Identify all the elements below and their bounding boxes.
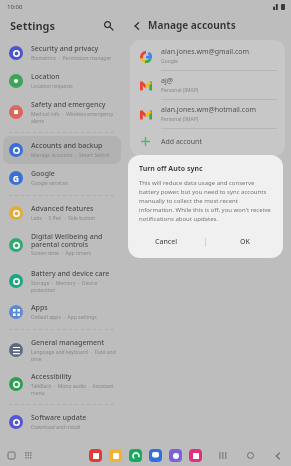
staticText: General management [31,338,105,348]
staticText: Download and install [31,424,81,431]
staticText: Personal (IMAP) [161,87,199,94]
button[interactable]: Back [129,18,144,33]
staticText: G [13,173,19,184]
button[interactable]: Software update [3,408,121,436]
button[interactable]: G [3,164,121,192]
staticText: Auto sync data [136,168,185,178]
staticText: Screen time · App timers [31,250,91,257]
staticText: Manage accounts · Smart Switch [31,152,110,159]
staticText: Accessibility [31,372,72,382]
button[interactable]: Digital Wellbeing and parental controls [3,227,121,262]
staticText: Location [31,72,60,82]
button[interactable]: Phone [129,449,142,462]
button[interactable]: Security and privacy [3,39,121,67]
button[interactable]: Cancel [128,232,205,252]
staticText: OK [240,237,250,247]
staticText: Google services [31,180,68,187]
staticText: Default apps · App settings [31,314,97,321]
button[interactable]: Advanced features [3,199,121,227]
staticText: This will reduce data usage and conserve… [139,179,272,223]
staticText: TalkBack · Mono audio · Assistant menu [31,383,117,396]
staticText: alan.jones.wm@hotmail.com [161,105,256,115]
button[interactable]: Samsung Notes [89,449,102,462]
staticText: alan.jones.wm@gmail.com [161,47,250,57]
staticText: Biometrics · Permission manager [31,55,112,62]
button[interactable]: Messages [149,449,162,462]
staticText: Software update [31,413,87,423]
staticText: Google [161,58,178,65]
button[interactable]: Accounts and backup [3,136,121,164]
button[interactable]: My Files [109,449,122,462]
staticText: Apps [31,303,48,313]
staticText: Labs · S Pen · Side button [31,215,96,222]
staticText: Personal (IMAP) [161,116,199,123]
button[interactable]: Screenshot [6,450,17,461]
staticText: Cancel [155,237,178,247]
staticText: Location requests [31,83,73,90]
button[interactable]: Accessibility [3,367,121,401]
button[interactable]: Location [3,67,121,95]
staticText: Manage accounts [148,18,236,32]
button[interactable]: Home [245,450,256,461]
staticText: Digital Wellbeing and parental controls [31,232,117,249]
staticText: aj@ [161,76,174,86]
button[interactable]: Add account [130,129,285,154]
button[interactable]: Safety and emergency [3,95,121,129]
staticText: 10:00 [7,3,23,11]
staticText: Accounts and backup [31,141,103,151]
staticText: Battery and device care [31,269,110,279]
staticText: Advanced features [31,204,94,214]
staticText: Safety and emergency [31,100,106,110]
button[interactable]: General management [3,333,121,367]
button[interactable]: alan.jones.wm@gmail.com [130,42,285,70]
staticText: Language and keyboard · Date and time [31,349,117,362]
staticText: Turn off Auto sync [139,164,203,174]
staticText: Security and privacy [31,44,99,54]
button[interactable]: OK [206,232,283,252]
staticText: Storage · Memory · Device protection [31,280,117,293]
button[interactable]: alan.jones.wm@hotmail.com [130,100,285,128]
button[interactable]: Battery and device care [3,264,121,298]
button[interactable]: Gallery [189,449,202,462]
staticText: Add account [161,137,202,147]
button[interactable]: All apps [23,450,34,461]
button[interactable]: Search [101,18,116,33]
button[interactable]: Recents [218,450,229,461]
button[interactable]: Internet [169,449,182,462]
staticText: Settings [10,18,56,33]
button[interactable]: Back [272,450,283,461]
button[interactable]: Auto sync data [124,163,291,183]
button[interactable]: aj@ [130,71,285,99]
staticText: Medical info · Wireless emergency alerts [31,111,117,124]
button[interactable]: Apps [3,298,121,326]
staticText: Google [31,169,55,179]
